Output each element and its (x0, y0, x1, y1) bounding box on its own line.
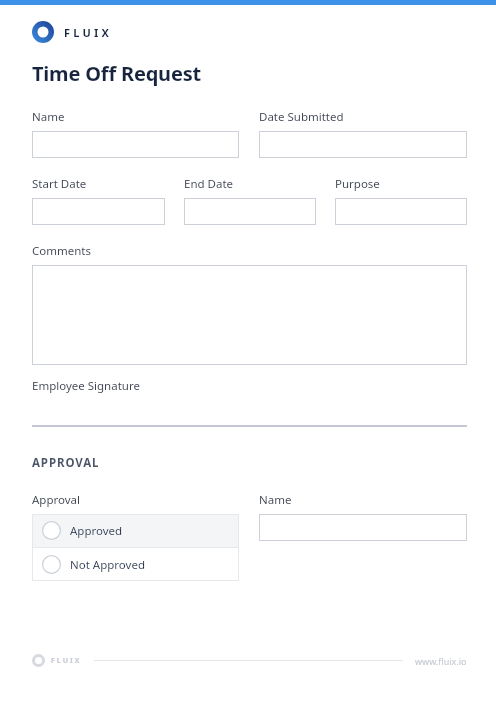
button[interactable] (32, 198, 165, 225)
button[interactable] (32, 131, 239, 158)
staticText: Approval (32, 492, 81, 508)
button[interactable] (335, 198, 467, 225)
staticText: FLUIX (64, 25, 113, 40)
button[interactable] (32, 265, 467, 365)
staticText: Date Submitted (259, 109, 344, 125)
staticText: Employee Signature (32, 378, 140, 394)
staticText: Purpose (335, 176, 380, 192)
staticText: APPROVAL (32, 455, 100, 471)
staticText: Not Approved (70, 557, 145, 573)
staticText: FLUIX (51, 656, 82, 666)
staticText: End Date (184, 176, 234, 192)
staticText: Time Off Request (32, 60, 201, 87)
staticText: Approved (70, 523, 123, 539)
staticText: Name (259, 492, 292, 508)
button[interactable] (184, 198, 316, 225)
button[interactable] (259, 131, 467, 158)
staticText: Start Date (32, 176, 87, 192)
staticText: Name (32, 109, 65, 125)
button[interactable]: Approved (32, 514, 239, 547)
button[interactable] (259, 514, 467, 541)
staticText: www.fluix.io (415, 655, 467, 667)
button[interactable]: Not Approved (32, 548, 239, 581)
staticText: Comments (32, 243, 91, 259)
